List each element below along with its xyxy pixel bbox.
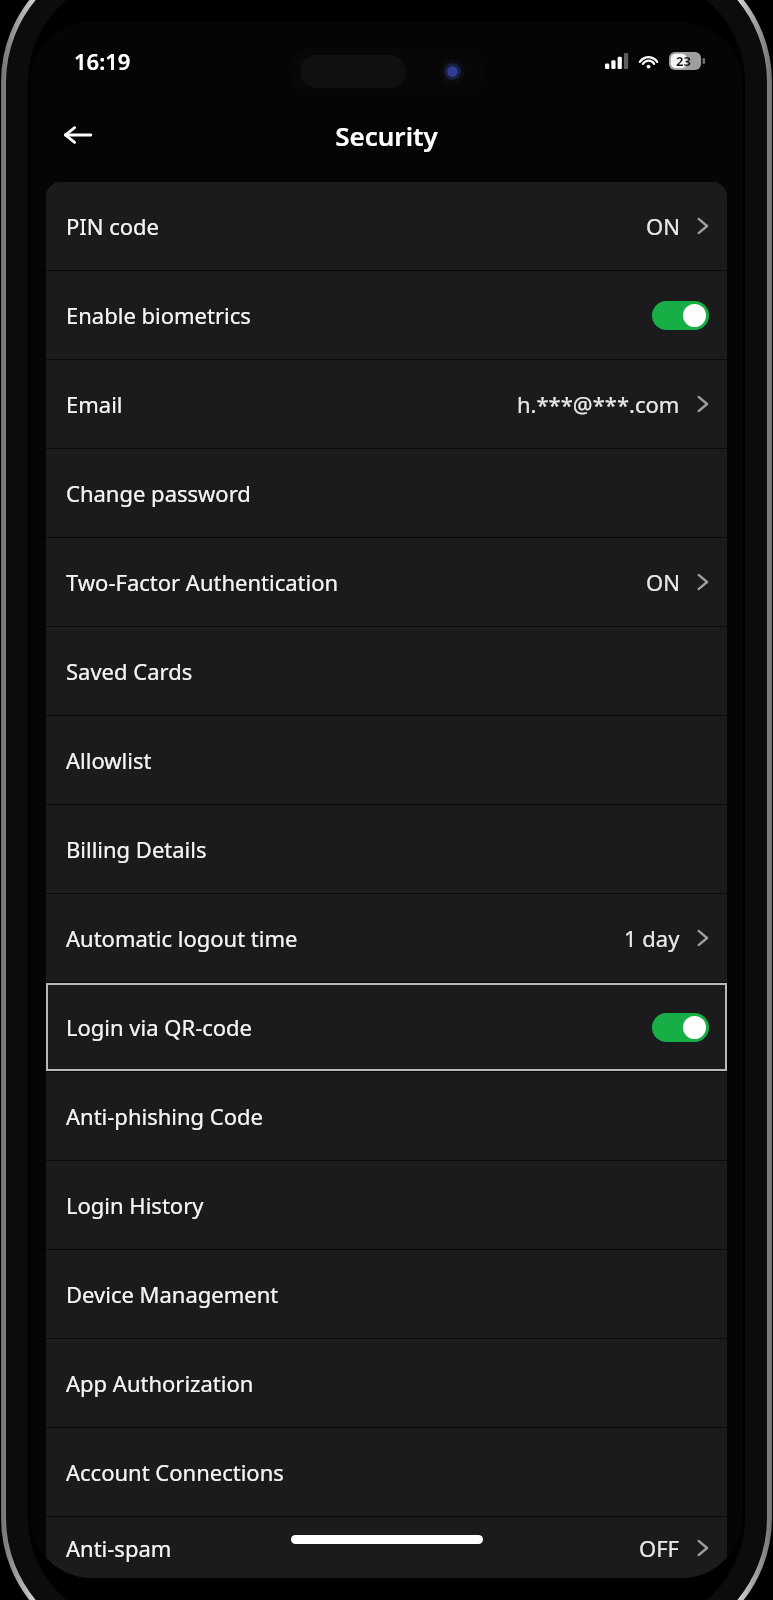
staticText: Automatic logout time <box>66 923 624 953</box>
button[interactable]: Allowlist <box>46 716 727 804</box>
button[interactable]: Change password <box>46 449 727 537</box>
staticText: 1 day <box>624 923 680 953</box>
staticText: h.***@***.com <box>517 389 680 419</box>
button[interactable]: Anti-spam <box>46 1517 727 1578</box>
button[interactable]: Automatic logout time <box>46 894 727 982</box>
button[interactable]: Email <box>46 360 727 448</box>
staticText: Two-Factor Authentication <box>66 567 646 597</box>
button[interactable]: Toggle on <box>652 1013 709 1042</box>
staticText: 23 <box>676 52 691 70</box>
button[interactable]: Login via QR-code <box>46 983 727 1071</box>
staticText: OFF <box>639 1533 680 1563</box>
staticText: Saved Cards <box>66 656 709 686</box>
button[interactable]: Anti-phishing Code <box>46 1072 727 1160</box>
staticText: Security <box>335 118 438 153</box>
button[interactable]: PIN code <box>46 182 727 270</box>
staticText: Anti-spam <box>66 1533 639 1563</box>
staticText: Anti-phishing Code <box>66 1101 709 1131</box>
button[interactable]: App Authorization <box>46 1339 727 1427</box>
button[interactable]: Toggle on <box>652 301 709 330</box>
staticText: Allowlist <box>66 745 709 775</box>
staticText: ON <box>646 211 680 241</box>
staticText: Change password <box>66 478 709 508</box>
staticText: App Authorization <box>66 1368 709 1398</box>
button[interactable]: Device Management <box>46 1250 727 1338</box>
staticText: Email <box>66 389 517 419</box>
staticText: Login History <box>66 1190 709 1220</box>
button[interactable]: Enable biometrics <box>46 271 727 359</box>
staticText: Enable biometrics <box>66 300 652 330</box>
staticText: PIN code <box>66 211 646 241</box>
button[interactable]: Back <box>52 109 104 161</box>
button[interactable]: Account Connections <box>46 1428 727 1516</box>
button[interactable]: Billing Details <box>46 805 727 893</box>
staticText: Device Management <box>66 1279 709 1309</box>
staticText: 16:19 <box>74 46 131 76</box>
staticText: Billing Details <box>66 834 709 864</box>
staticText: Login via QR-code <box>66 1012 652 1042</box>
staticText: ON <box>646 567 680 597</box>
staticText: Account Connections <box>66 1457 709 1487</box>
button[interactable]: Saved Cards <box>46 627 727 715</box>
button[interactable]: Login History <box>46 1161 727 1249</box>
button[interactable]: Two-Factor Authentication <box>46 538 727 626</box>
